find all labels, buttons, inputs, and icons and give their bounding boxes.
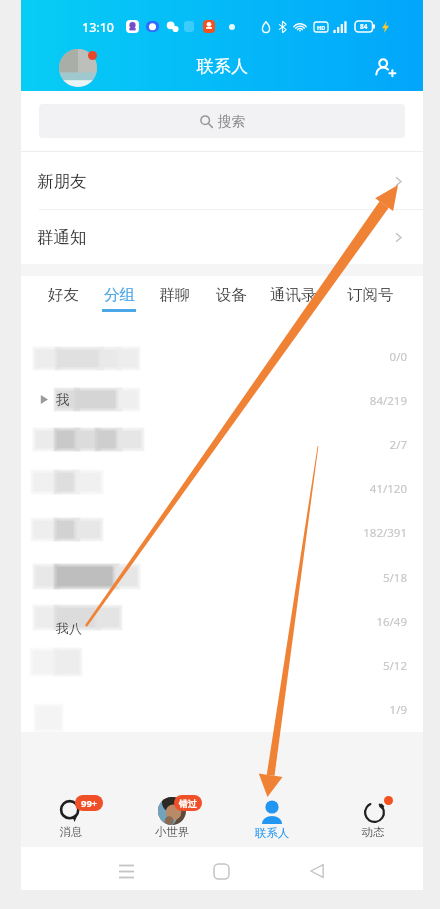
button[interactable]: 新朋友 [21,154,423,209]
staticText: 通讯录 [270,285,317,305]
staticText: 联系人 [232,826,312,840]
button[interactable]: 41/120 [21,467,423,511]
staticText: 搜索 [218,113,245,130]
button[interactable]: 错过 [132,778,212,846]
staticText: 新朋友 [37,171,87,192]
button[interactable]: 182/391 [21,511,423,555]
button[interactable]: 群聊 [154,276,194,320]
staticText: 我八 [56,620,82,636]
button[interactable]: Home [199,849,243,893]
staticText: HD [317,24,326,31]
button[interactable]: Back [295,849,339,893]
button[interactable]: 通讯录 [266,276,320,320]
button[interactable]: 0/0 [21,335,423,379]
button[interactable]: 联系人 [232,778,312,846]
staticText: 182/391 [351,525,407,541]
staticText: 错过 [179,798,197,809]
staticText: 分组 [104,285,135,305]
staticText: 5/12 [351,658,407,674]
staticText: 1/9 [351,702,407,718]
staticText: 5/18 [351,570,407,586]
staticText: 订阅号 [347,285,394,305]
staticText: 13:10 [82,19,115,36]
staticText: 41/120 [351,481,407,497]
button[interactable]: 99+ [31,778,111,846]
staticText: 84 [360,22,368,31]
button[interactable]: 群通知 [21,210,423,265]
staticText: 好友 [48,285,79,305]
button[interactable]: Recents [104,849,148,893]
staticText: 16/49 [351,614,407,630]
staticText: 小世界 [132,825,212,839]
staticText: 设备 [216,285,247,305]
button[interactable]: 5/18 [21,556,423,600]
button[interactable]: 动态 [333,778,413,846]
button[interactable]: 订阅号 [343,276,397,320]
staticText: 2/7 [351,437,407,453]
staticText: 0/0 [351,349,407,365]
button[interactable]: 1/9 [21,688,423,732]
staticText: 99+ [81,797,98,810]
button[interactable]: 好友 [43,276,83,320]
button[interactable]: 设备 [211,276,251,320]
button[interactable]: 84/219 [21,379,423,423]
staticText: 84/219 [351,393,407,409]
staticText: 动态 [333,825,413,839]
button[interactable]: Profile [58,48,98,88]
button[interactable]: Add contact [365,48,405,88]
staticText: 联系人 [197,56,248,77]
staticText: 群通知 [37,227,87,248]
button[interactable]: 5/12 [21,644,423,688]
button[interactable]: 16/49 [21,600,423,644]
staticText: 消息 [31,825,111,839]
button[interactable]: 搜索 [39,104,405,138]
button[interactable]: 分组 [99,276,139,320]
staticText: 我 [56,391,70,408]
staticText: 群聊 [159,285,190,305]
button[interactable]: 2/7 [21,423,423,467]
